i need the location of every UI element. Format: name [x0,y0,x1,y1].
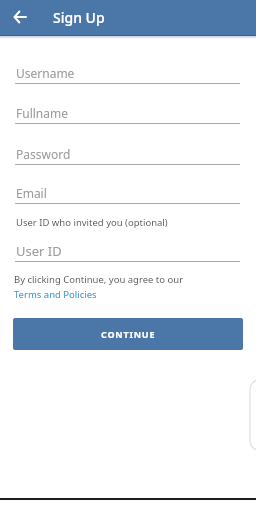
staticText: Sign Up [53,8,105,27]
staticText: Password [16,146,71,162]
staticText: Fullname [16,105,68,121]
staticText: User ID [16,242,62,260]
button[interactable]: Username [16,65,240,81]
staticText: CONTINUE [101,328,156,340]
staticText: Username [16,65,75,81]
staticText: By clicking Continue, you agree to our [14,273,184,286]
button[interactable]: Terms and Policies [14,288,97,301]
button[interactable] [0,0,38,36]
staticText: User ID who invited you (optional) [16,216,168,229]
button[interactable]: CONTINUE [13,318,243,350]
button[interactable]: Email [16,185,240,201]
staticText: Email [16,185,47,201]
button[interactable]: User ID [16,242,240,260]
button[interactable]: Password [16,146,240,162]
button[interactable]: Fullname [16,105,240,121]
